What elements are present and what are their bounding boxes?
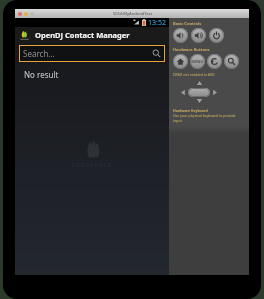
staticText: DPAD not enabled in AVD: [173, 72, 215, 77]
button[interactable]: Home: [173, 54, 188, 69]
button[interactable]: Minimize: [24, 12, 28, 16]
button[interactable]: D-pad down: [195, 96, 204, 105]
button[interactable]: D-pad up: [195, 79, 204, 88]
button[interactable]: Menu: [190, 54, 205, 69]
staticText: Search...: [23, 48, 152, 59]
button[interactable]: Power: [209, 28, 224, 43]
button[interactable]: Search: [224, 54, 239, 69]
button[interactable]: Close: [18, 12, 22, 16]
button[interactable]: App icon, up: [19, 30, 30, 41]
button[interactable]: D-pad left: [179, 88, 188, 97]
button[interactable]: Search...: [19, 45, 165, 62]
button[interactable]: D-pad center: [188, 88, 210, 97]
staticText: Hardware Buttons: [173, 47, 210, 52]
staticText: Use your physical keyboard to provide in…: [173, 113, 245, 123]
staticText: MENU: [191, 59, 204, 64]
staticText: 5554:MyAndroidTest: [113, 11, 152, 16]
button[interactable]: D-pad right: [210, 88, 219, 97]
button[interactable]: Volume up: [191, 28, 206, 43]
staticText: FORGEROCK: [72, 162, 113, 169]
button[interactable]: Volume down: [173, 28, 188, 43]
other: Search: [152, 49, 161, 58]
button[interactable]: Zoom: [30, 12, 34, 16]
staticText: Hardware Keyboard: [173, 108, 208, 113]
button[interactable]: Back: [207, 54, 222, 69]
staticText: No result: [24, 69, 59, 80]
staticText: 13:52: [148, 18, 166, 27]
staticText: Basic Controls: [173, 21, 202, 26]
staticText: OpenDJ Contact Manager: [35, 30, 130, 40]
